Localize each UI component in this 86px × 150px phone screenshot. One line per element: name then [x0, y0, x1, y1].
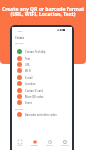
button[interactable]: More QR codes	[12, 93, 72, 100]
staticText: QR code	[15, 42, 24, 45]
staticText: Location	[25, 82, 36, 86]
other: Settings	[63, 140, 67, 144]
staticText: E-mail	[25, 76, 33, 80]
staticText: Barcode	[15, 108, 24, 111]
other: Scan	[18, 140, 22, 144]
button[interactable]: Settings	[57, 140, 72, 147]
staticText: Wi-Fi	[25, 69, 31, 73]
staticText: Contact V-card	[25, 89, 43, 93]
staticText: 9:41	[18, 29, 23, 32]
staticText: History	[46, 144, 54, 147]
button[interactable]: Contact Tech Alp	[12, 48, 72, 55]
button[interactable]: Scan	[12, 140, 27, 147]
staticText: Create any QR or barcode format	[0, 6, 86, 13]
staticText: (URL, WIFI, Location, Text)	[0, 11, 86, 18]
button[interactable]: Text	[12, 55, 72, 62]
staticText: Create	[15, 36, 25, 40]
staticText: Scan	[17, 144, 22, 147]
staticText: More QR codes	[25, 95, 44, 99]
staticText: URL	[25, 63, 30, 67]
button[interactable]: History	[42, 140, 57, 147]
staticText: Text	[25, 57, 30, 61]
button[interactable]: Contact V-card	[12, 87, 72, 94]
button[interactable]: Barcodes and other codes	[12, 111, 72, 118]
button[interactable]: Event	[12, 99, 72, 106]
staticText: Barcodes and other codes	[25, 113, 57, 117]
other: History	[48, 140, 52, 144]
button[interactable]: Create	[27, 140, 42, 147]
button[interactable]: URL	[12, 61, 72, 68]
staticText: Event	[25, 101, 32, 105]
button[interactable]: Location	[12, 80, 72, 87]
staticText: Settings	[61, 144, 69, 147]
button[interactable]: Wi-Fi	[12, 67, 72, 74]
button[interactable]: E-mail	[12, 74, 72, 81]
staticText: Contact Tech Alp	[25, 50, 46, 54]
staticText: Create	[31, 144, 38, 147]
other: Create	[33, 140, 37, 144]
